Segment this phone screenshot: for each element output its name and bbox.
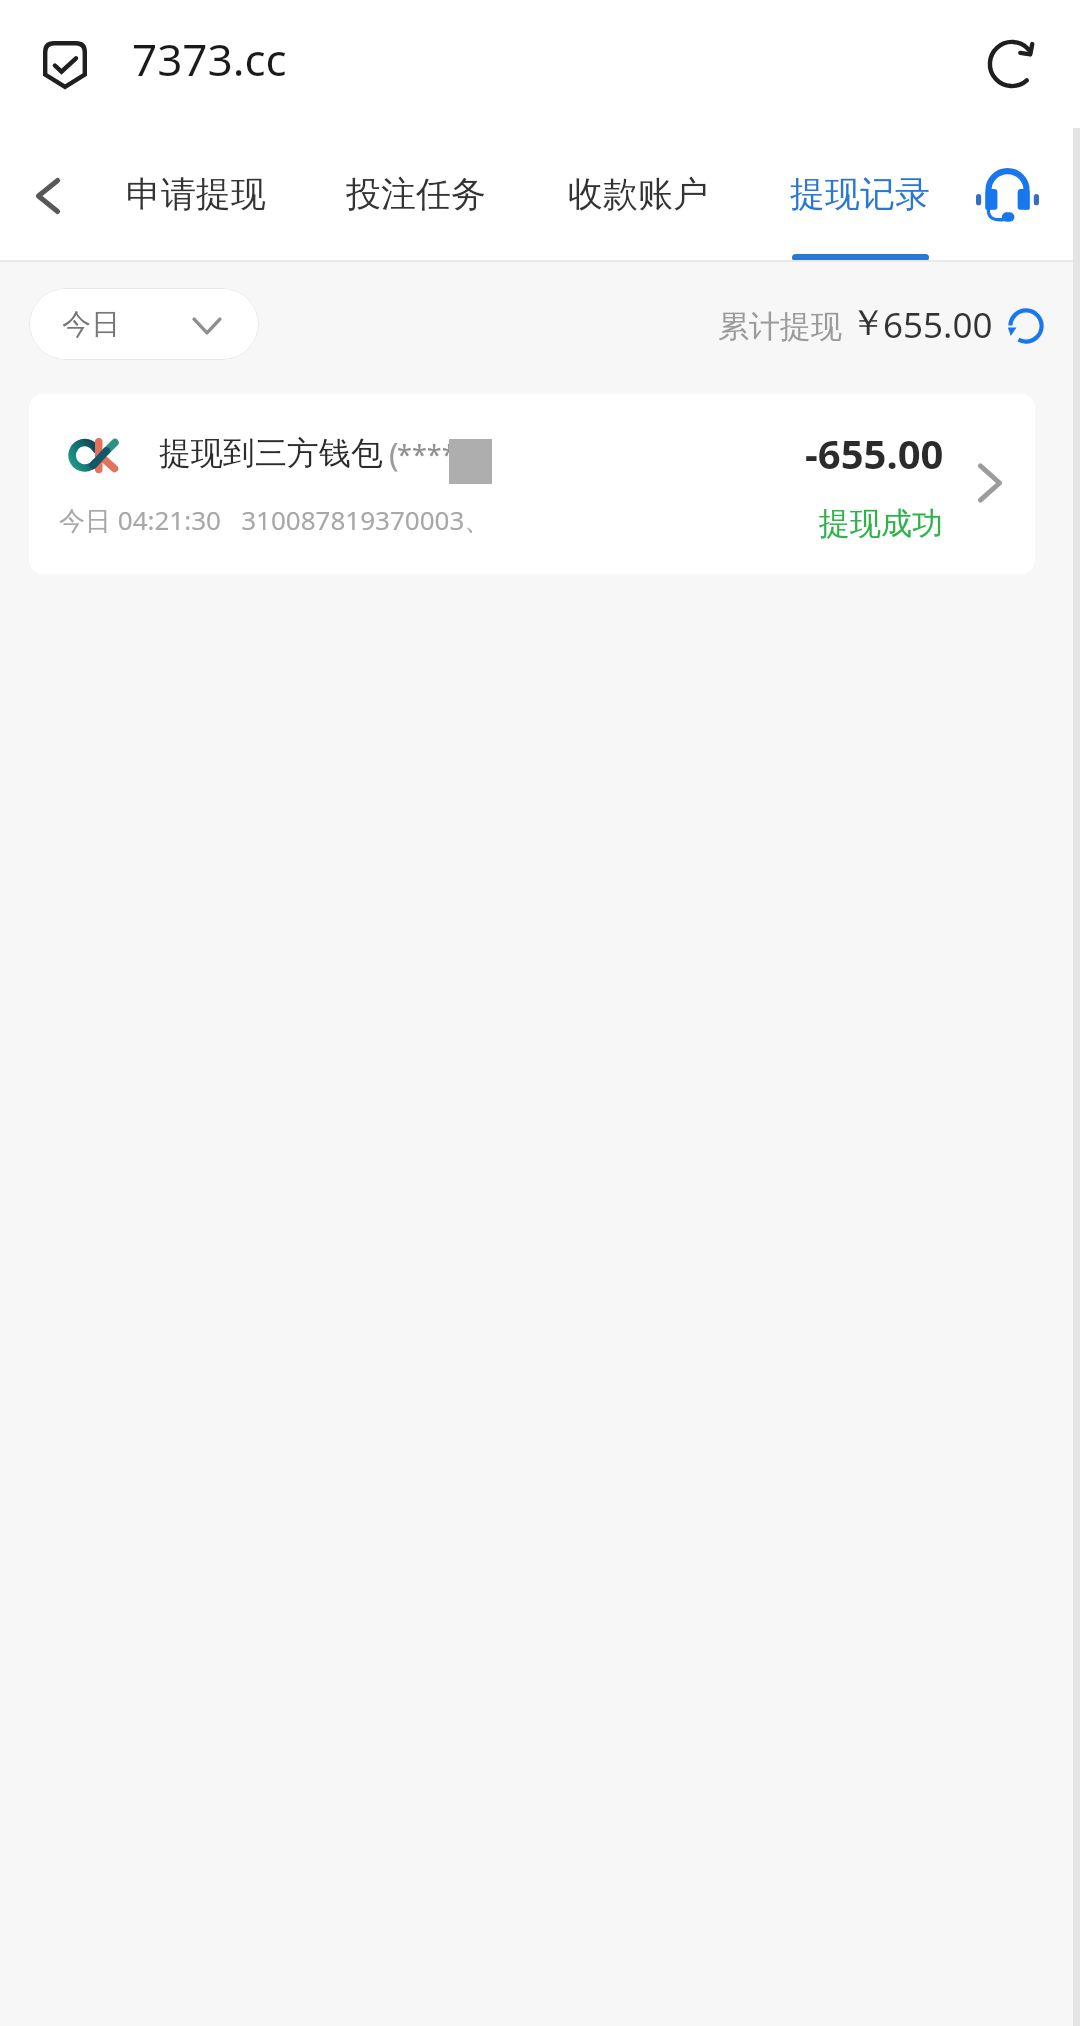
staticText: 申请提现 [126, 172, 266, 216]
staticText: 今日 [62, 306, 120, 343]
button[interactable]: 今日 [29, 288, 259, 360]
staticText: 投注任务 [346, 172, 486, 216]
staticText: 累计提现 [718, 307, 842, 346]
button[interactable]: 收款账户 [548, 128, 728, 260]
staticText: 今日 04:21:30 310087819370003、 [59, 502, 491, 538]
button[interactable]: Site security information [28, 26, 102, 102]
button[interactable]: 投注任务 [326, 128, 506, 260]
button[interactable]: Refresh total [1006, 306, 1046, 346]
button[interactable]: 提现到三方钱包 [29, 394, 1035, 574]
staticText: ￥ [850, 300, 886, 345]
staticText: 提现成功 [819, 504, 943, 543]
staticText: 提现记录 [790, 172, 930, 216]
staticText: 655.00 [883, 301, 993, 349]
staticText: 提现到三方钱包 [159, 433, 383, 473]
button[interactable]: 申请提现 [106, 128, 286, 260]
staticText: 7373.cc [132, 29, 287, 89]
staticText: ( [389, 433, 399, 477]
staticText: -655.00 [805, 426, 944, 480]
staticText: **** [397, 436, 457, 473]
staticText: 收款账户 [568, 172, 708, 216]
button[interactable]: 提现记录 [770, 128, 950, 260]
button[interactable]: Customer service [976, 168, 1039, 222]
button[interactable]: Back [10, 146, 82, 242]
button[interactable]: 7373.cc [110, 20, 870, 108]
button[interactable]: Reload page [986, 38, 1038, 90]
